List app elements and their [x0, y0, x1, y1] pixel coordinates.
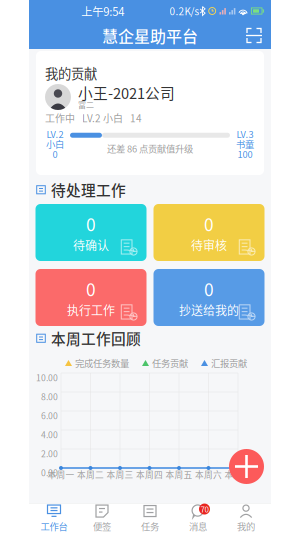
staticText: 便签	[93, 519, 111, 533]
staticText: 8.00	[41, 390, 58, 403]
button[interactable]: 70	[174, 504, 222, 532]
staticText: 小王-2021公司	[78, 82, 175, 103]
button[interactable]: 0	[153, 204, 264, 261]
staticText: 本周三	[106, 468, 133, 481]
staticText: 0	[52, 147, 57, 161]
staticText: 工作台	[40, 519, 67, 533]
staticText: 本周四	[136, 468, 163, 481]
staticText: 本周五	[165, 468, 192, 481]
staticText: LV.3	[236, 127, 253, 141]
staticText: 14	[130, 111, 142, 125]
button[interactable]: 任务	[126, 504, 174, 532]
staticText: 小白	[46, 137, 64, 151]
staticText: 0	[86, 211, 96, 236]
staticText: 10.00	[36, 371, 58, 384]
staticText: LV.2 小白	[82, 111, 123, 125]
staticText: 还差 86 点贡献值升级	[107, 142, 193, 155]
staticText: 100	[237, 147, 252, 161]
staticText: 6.00	[41, 409, 58, 422]
staticText: 待处理工作	[51, 179, 126, 200]
staticText: 本周工作回顾	[51, 327, 141, 349]
button[interactable]: 我的	[222, 504, 270, 532]
staticText: 本周六	[195, 468, 222, 481]
button[interactable]: 便签	[78, 504, 126, 532]
staticText: 消息	[189, 519, 207, 533]
staticText: 0.2K/s	[169, 4, 199, 18]
staticText: 待审核	[191, 236, 227, 254]
staticText: 待确认	[73, 236, 109, 254]
button[interactable]: 0	[35, 204, 146, 261]
staticText: 0	[204, 211, 214, 236]
staticText: 我的贡献	[45, 63, 97, 83]
staticText: 本周一	[47, 468, 74, 481]
button[interactable]: 扫一扫	[243, 24, 265, 46]
staticText: 汇报贡献	[211, 356, 247, 370]
staticText: LV.2	[46, 127, 63, 141]
staticText: 上午9:54	[81, 3, 124, 19]
staticText: 2.00	[41, 447, 58, 460]
staticText: 书童	[236, 137, 254, 151]
staticText: 任务贡献	[152, 356, 188, 370]
button[interactable]: 新建	[229, 449, 264, 484]
staticText: 慧企星助平台	[102, 24, 198, 47]
staticText: 本周日	[224, 468, 251, 481]
staticText: 70	[200, 503, 208, 515]
staticText: 完成任务数量	[75, 356, 129, 370]
staticText: 工作中	[45, 111, 75, 125]
staticText: 0	[86, 276, 96, 301]
staticText: 执行工作	[67, 301, 115, 319]
staticText: 富二	[78, 99, 94, 110]
staticText: 0	[204, 276, 214, 301]
button[interactable]: 0	[153, 269, 264, 326]
button[interactable]: 工作台	[30, 504, 78, 532]
staticText: 4.00	[41, 428, 58, 441]
staticText: 我的	[237, 519, 255, 533]
staticText: 0.00	[41, 466, 58, 479]
staticText: 抄送给我的	[179, 301, 239, 319]
button[interactable]: 0	[35, 269, 146, 326]
staticText: 本周二	[77, 468, 104, 481]
staticText: 任务	[141, 519, 159, 533]
